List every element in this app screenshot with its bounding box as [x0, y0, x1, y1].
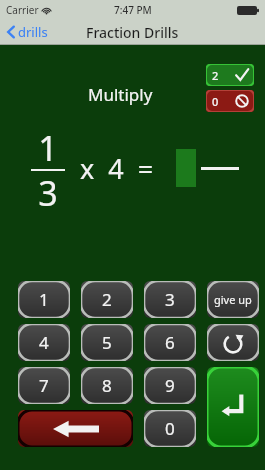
staticText: Carrier — [6, 3, 39, 17]
button[interactable]: 0 — [144, 410, 196, 447]
button[interactable]: Refresh — [207, 324, 259, 361]
staticText: 7:47 PM — [114, 3, 152, 17]
button[interactable]: 9 — [144, 367, 196, 404]
staticText: 1 — [39, 288, 49, 311]
button[interactable]: 0 — [206, 90, 254, 112]
staticText: Fraction Drills — [86, 23, 179, 42]
staticText: 2 — [212, 68, 219, 83]
button[interactable]: 5 — [81, 324, 133, 361]
staticText: give up — [214, 292, 252, 307]
staticText: 5 — [102, 331, 112, 354]
button[interactable]: 2 — [81, 281, 133, 318]
button[interactable]: 6 — [144, 324, 196, 361]
button[interactable]: 7 — [18, 367, 70, 404]
staticText: 8 — [102, 374, 112, 397]
button[interactable]: 8 — [81, 367, 133, 404]
staticText: 6 — [165, 331, 175, 354]
staticText: drills — [18, 23, 48, 41]
staticText: 0 — [212, 94, 219, 109]
staticText: Multiply — [88, 83, 153, 106]
staticText: 3 — [38, 170, 58, 212]
button[interactable]: give up — [207, 281, 259, 318]
button[interactable]: 4 — [18, 324, 70, 361]
staticText: 2 — [102, 288, 112, 311]
button[interactable]: Enter — [207, 367, 259, 447]
staticText: 0 — [165, 417, 175, 440]
staticText: 9 — [165, 374, 175, 397]
button[interactable]: drills — [5, 21, 50, 43]
button[interactable]: Backspace — [18, 410, 133, 447]
button[interactable]: 2 — [206, 64, 254, 86]
button[interactable]: 3 — [144, 281, 196, 318]
staticText: 1 — [38, 125, 58, 171]
staticText: 7 — [39, 374, 49, 397]
staticText: 4 — [39, 331, 49, 354]
staticText: x 4 = — [80, 150, 154, 187]
button[interactable]: 1 — [18, 281, 70, 318]
staticText: 3 — [165, 288, 175, 311]
